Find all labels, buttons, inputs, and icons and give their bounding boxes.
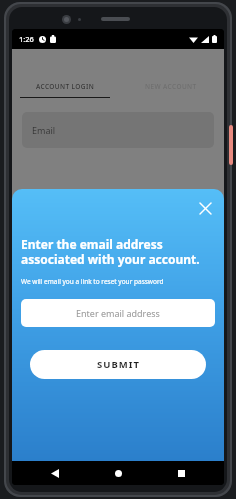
staticText: SUBMIT (97, 358, 140, 371)
staticText: ACCOUNT LOGIN (36, 82, 95, 91)
staticText: Enter the email address associated with … (21, 236, 215, 267)
button[interactable]: Enter email address (21, 299, 215, 327)
button[interactable]: Close (194, 197, 216, 219)
button[interactable]: Home (98, 461, 138, 485)
staticText: Email (32, 124, 56, 136)
button[interactable]: SUBMIT (30, 350, 206, 379)
button[interactable]: Back (35, 461, 75, 485)
staticText: We will email you a link to reset your p… (21, 277, 164, 286)
staticText: 1:26 (19, 34, 34, 44)
staticText: NEW ACCOUNT (145, 82, 197, 91)
button[interactable]: ACCOUNT LOGIN (12, 75, 118, 97)
staticText: Enter email address (76, 307, 160, 319)
button[interactable]: Recent apps (161, 461, 201, 485)
button[interactable]: Email (22, 112, 214, 148)
